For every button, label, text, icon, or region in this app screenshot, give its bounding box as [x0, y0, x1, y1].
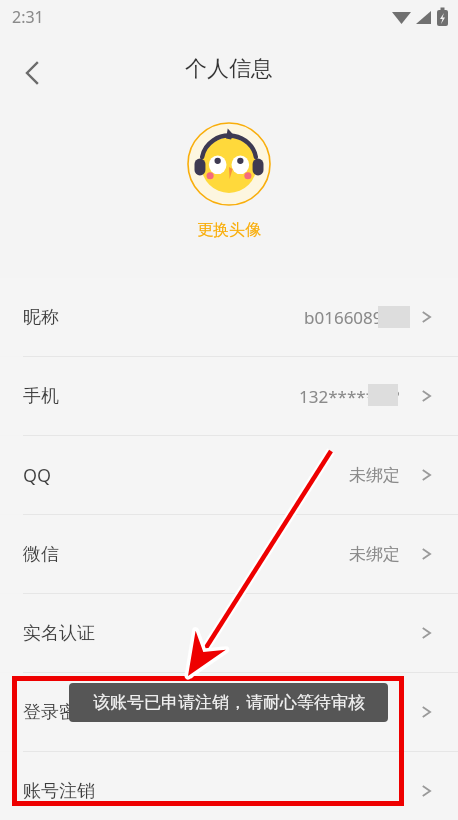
button[interactable]: 更换头像	[197, 220, 261, 240]
staticText: 实名认证	[23, 622, 95, 645]
staticText: 更换头像	[197, 220, 261, 240]
staticText: 微信	[23, 543, 59, 566]
staticText: 132*****6??	[299, 385, 400, 408]
button[interactable]: QQ	[0, 436, 458, 514]
staticText: 2:31	[12, 6, 44, 28]
button[interactable]: 昵称	[0, 278, 458, 356]
staticText: b01660899?	[304, 306, 400, 329]
staticText: 账号注销	[23, 780, 95, 803]
staticText: 手机	[23, 385, 59, 408]
staticText: 未绑定	[349, 544, 400, 565]
button[interactable]: 登录密码	[0, 673, 458, 751]
button[interactable]: Back	[8, 48, 58, 98]
staticText: QQ	[23, 463, 52, 488]
staticText: 未绑定	[349, 465, 400, 486]
button[interactable]: Change avatar	[187, 122, 271, 206]
button[interactable]: 账号注销	[0, 752, 458, 820]
staticText: 昵称	[23, 306, 59, 329]
staticText: 登录密码	[23, 701, 95, 724]
staticText: 个人信息	[185, 55, 273, 83]
button[interactable]: 实名认证	[0, 594, 458, 672]
button[interactable]: 微信	[0, 515, 458, 593]
button[interactable]: 手机	[0, 357, 458, 435]
staticText: 该账号已申请注销，请耐心等待审核	[93, 692, 365, 713]
